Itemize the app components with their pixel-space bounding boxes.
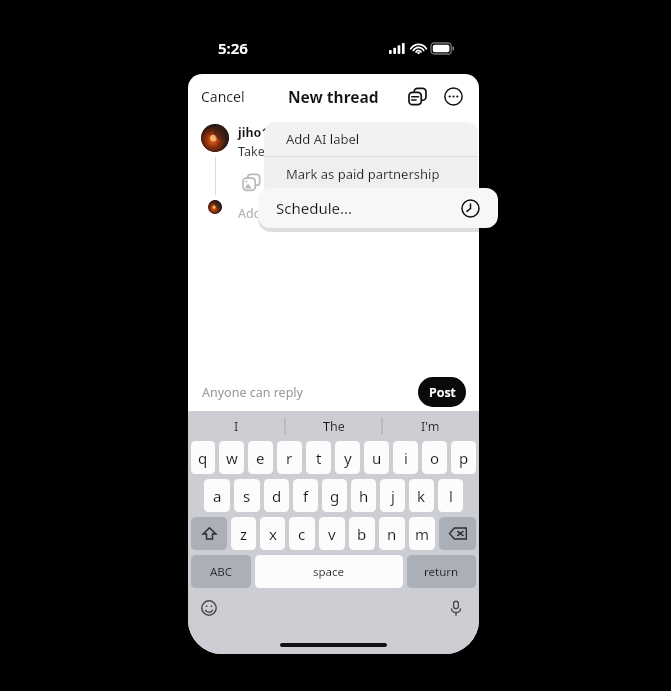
button[interactable]: Dictation xyxy=(443,595,469,621)
button[interactable]: w xyxy=(219,441,244,474)
staticText: p xyxy=(459,448,469,468)
staticText: space xyxy=(313,564,345,580)
button[interactable]: j xyxy=(380,479,405,512)
staticText: t xyxy=(316,448,322,468)
staticText: Add xyxy=(238,205,265,222)
button[interactable]: f xyxy=(293,479,318,512)
staticText: Take a m xyxy=(238,143,290,160)
staticText: l xyxy=(449,486,453,506)
staticText: e xyxy=(256,448,265,468)
staticText: I xyxy=(234,418,239,435)
staticText: g xyxy=(330,486,340,506)
staticText: 5:26 xyxy=(218,38,248,58)
button[interactable]: return xyxy=(407,555,476,588)
staticText: z xyxy=(240,524,248,544)
staticText: o xyxy=(430,448,440,468)
staticText: d xyxy=(272,486,282,506)
button[interactable]: u xyxy=(364,441,389,474)
button[interactable]: r xyxy=(277,441,302,474)
staticText: y xyxy=(344,448,352,468)
button[interactable]: Emoji xyxy=(196,595,222,621)
staticText: Schedule... xyxy=(276,198,353,218)
button[interactable]: c xyxy=(289,517,315,550)
button[interactable]: z xyxy=(231,517,256,550)
staticText: a xyxy=(213,486,222,506)
staticText: m xyxy=(415,524,430,544)
button[interactable]: Drafts xyxy=(403,82,431,110)
button[interactable]: m xyxy=(409,517,435,550)
button[interactable]: e xyxy=(248,441,273,474)
button[interactable]: Post xyxy=(418,377,466,407)
button[interactable]: l xyxy=(438,479,463,512)
button[interactable]: s xyxy=(234,479,260,512)
staticText: I'm xyxy=(421,418,440,435)
button[interactable]: b xyxy=(349,517,375,550)
button[interactable]: x xyxy=(260,517,285,550)
staticText: w xyxy=(226,448,238,468)
staticText: jiho100x xyxy=(238,124,291,141)
button[interactable]: k xyxy=(409,479,434,512)
staticText: Post xyxy=(429,384,456,401)
staticText: s xyxy=(243,486,251,506)
button[interactable]: ABC xyxy=(191,555,251,588)
button[interactable]: Add AI label xyxy=(264,122,478,156)
staticText: h xyxy=(359,486,369,506)
staticText: q xyxy=(198,448,208,468)
button[interactable]: Add GIF xyxy=(272,169,298,195)
staticText: c xyxy=(298,524,306,544)
button[interactable]: g xyxy=(322,479,347,512)
button[interactable]: i xyxy=(393,441,418,474)
button[interactable]: y xyxy=(335,441,360,474)
button[interactable]: o xyxy=(422,441,447,474)
button[interactable]: Add photo xyxy=(238,169,264,195)
button[interactable]: a xyxy=(204,479,230,512)
staticText: x xyxy=(269,524,277,544)
staticText: k xyxy=(417,486,426,506)
button[interactable]: space xyxy=(255,555,403,588)
staticText: The xyxy=(323,418,345,435)
button[interactable]: I xyxy=(188,411,285,441)
staticText: i xyxy=(404,448,408,468)
button[interactable]: q xyxy=(191,441,215,474)
staticText: j xyxy=(391,486,395,506)
button[interactable]: d xyxy=(264,479,289,512)
staticText: New thread xyxy=(288,86,379,107)
button[interactable]: h xyxy=(351,479,376,512)
staticText: f xyxy=(303,486,309,506)
button[interactable]: Backspace xyxy=(439,517,476,550)
button[interactable]: The xyxy=(285,411,382,441)
button[interactable]: More options xyxy=(439,82,467,110)
button[interactable]: Cancel xyxy=(188,81,253,112)
staticText: b xyxy=(357,524,367,544)
button[interactable]: Mark as paid partnership xyxy=(264,157,478,190)
button[interactable]: Shift xyxy=(191,517,227,550)
staticText: ABC xyxy=(210,564,233,580)
staticText: Cancel xyxy=(201,87,245,106)
staticText: Mark as paid partnership xyxy=(286,165,440,183)
staticText: Add AI label xyxy=(286,130,360,148)
staticText: return xyxy=(424,564,459,580)
button[interactable]: p xyxy=(451,441,476,474)
button[interactable]: n xyxy=(379,517,405,550)
staticText: n xyxy=(387,524,397,544)
button[interactable]: t xyxy=(306,441,331,474)
staticText: v xyxy=(328,524,336,544)
staticText: u xyxy=(372,448,382,468)
staticText: r xyxy=(286,448,293,468)
button[interactable]: Schedule... xyxy=(258,188,498,228)
button[interactable]: I'm xyxy=(382,411,479,441)
button[interactable]: v xyxy=(319,517,345,550)
staticText: Anyone can reply xyxy=(202,384,303,401)
